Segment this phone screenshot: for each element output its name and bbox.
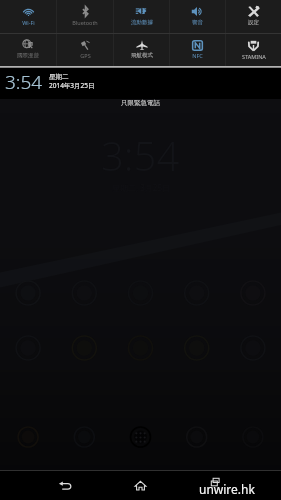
staticText: 國際漫遊: [17, 52, 39, 59]
staticText: Bluetooth: [72, 19, 98, 26]
staticText: 響音: [192, 19, 203, 26]
staticText: unwire.hk: [199, 481, 255, 497]
button[interactable]: 飛航模式: [114, 34, 169, 66]
staticText: 流動數據: [131, 19, 153, 26]
button[interactable]: Wi-Fi: [0, 0, 56, 33]
button[interactable]: Back: [45, 471, 85, 500]
staticText: 星期二: [49, 73, 69, 81]
staticText: 飛航模式: [131, 52, 153, 59]
button[interactable]: Recent apps: [195, 474, 235, 490]
staticText: GPS: [80, 52, 91, 59]
button[interactable]: 國際漫遊: [0, 34, 56, 66]
staticText: 2014年3月25日: [49, 81, 95, 90]
button[interactable]: Bluetooth: [57, 0, 113, 33]
button[interactable]: Home: [120, 471, 160, 500]
staticText: NFC: [192, 52, 203, 59]
staticText: Wi-Fi: [22, 19, 35, 26]
staticText: 只限緊急電話: [121, 99, 160, 107]
staticText: STAMINA: [242, 53, 266, 60]
button[interactable]: 響音: [170, 0, 225, 33]
button[interactable]: 流動數據: [114, 0, 169, 33]
button[interactable]: STAMINA: [226, 34, 281, 66]
button[interactable]: NFC: [170, 34, 225, 66]
button[interactable]: 設定: [226, 0, 281, 33]
button[interactable]: GPS: [57, 34, 113, 66]
staticText: 3:54: [5, 69, 43, 95]
staticText: 設定: [248, 19, 259, 26]
